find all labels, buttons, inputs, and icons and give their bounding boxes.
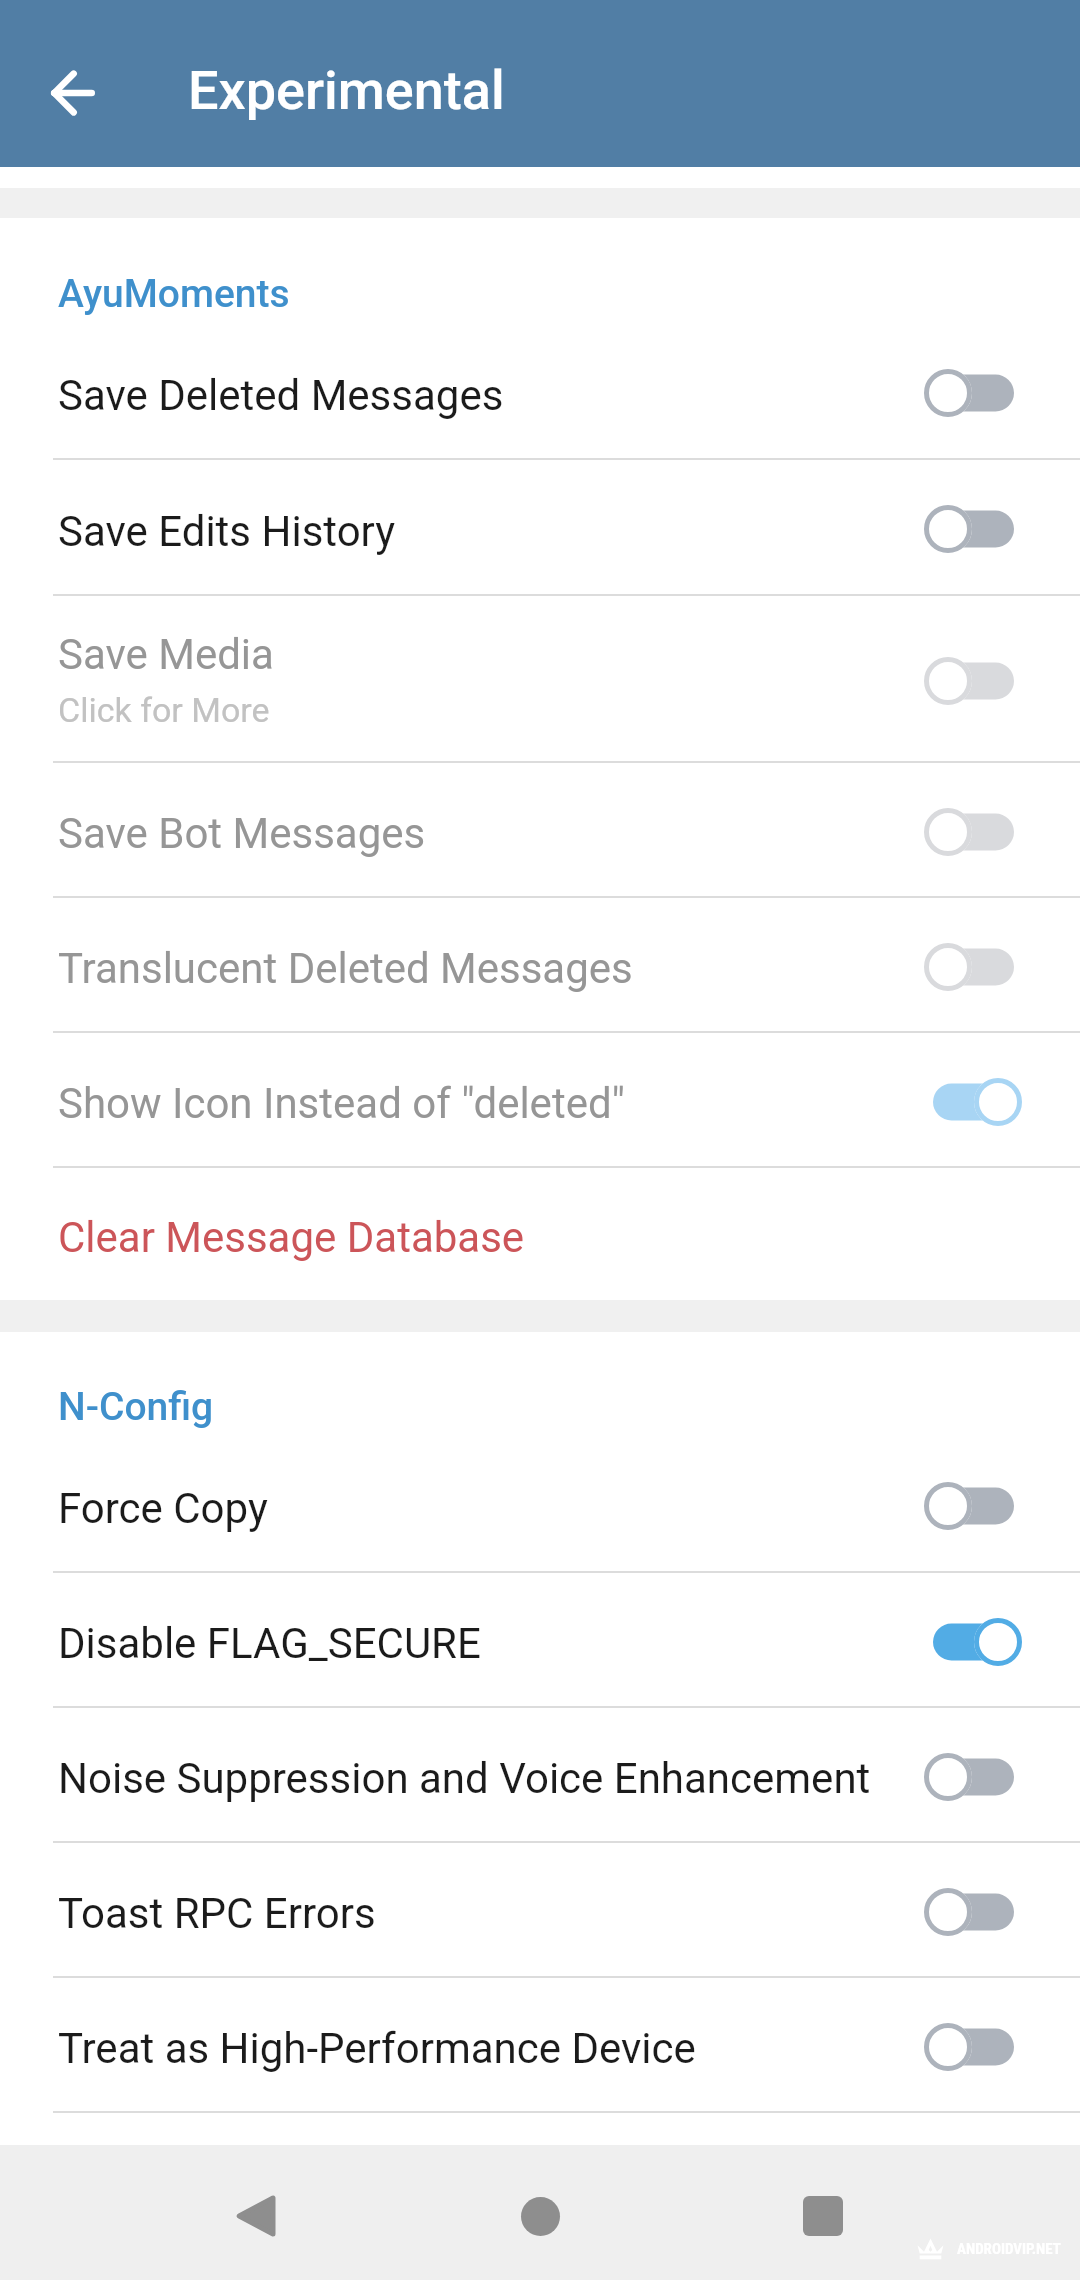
staticText: ANDROIDVIP.NET bbox=[957, 2240, 1061, 2258]
button[interactable]: Clear Message Database bbox=[0, 1168, 1080, 1300]
button[interactable]: Noise Suppression and Voice Enhancement bbox=[0, 1708, 1080, 1843]
button[interactable]: Toggle bbox=[922, 802, 1022, 862]
button[interactable]: Recents bbox=[763, 2156, 883, 2276]
button[interactable]: Toggle bbox=[922, 1747, 1022, 1807]
staticText: Disable FLAG_SECURE bbox=[58, 1619, 481, 1668]
button[interactable]: Toggle bbox=[922, 1476, 1022, 1536]
button[interactable]: Back bbox=[194, 2156, 314, 2276]
button[interactable]: Toggle bbox=[922, 651, 1022, 711]
button[interactable]: Toggle bbox=[922, 2017, 1022, 2077]
staticText: Click for More bbox=[58, 690, 270, 730]
button[interactable]: Show Icon Instead of "deleted" bbox=[0, 1033, 1080, 1168]
button[interactable]: Save Deleted Messages bbox=[0, 324, 1080, 460]
button[interactable]: Toggle bbox=[922, 937, 1022, 997]
button[interactable]: Translucent Deleted Messages bbox=[0, 898, 1080, 1033]
staticText: Show Icon Instead of "deleted" bbox=[58, 1079, 626, 1128]
button[interactable]: Back bbox=[0, 16, 145, 164]
button[interactable]: Toggle bbox=[922, 1882, 1022, 1942]
button[interactable]: Treat as High-Performance Device bbox=[0, 1978, 1080, 2113]
button[interactable]: Home bbox=[480, 2156, 600, 2276]
button[interactable]: Toggle bbox=[922, 1612, 1022, 1672]
button[interactable]: Toggle bbox=[922, 499, 1022, 559]
staticText: Save Edits History bbox=[58, 507, 396, 556]
staticText: N-Config bbox=[58, 1384, 214, 1430]
staticText: Clear Message Database bbox=[58, 1213, 525, 1262]
button[interactable]: Toast RPC Errors bbox=[0, 1843, 1080, 1978]
staticText: Experimental bbox=[188, 59, 505, 122]
staticText: Treat as High-Performance Device bbox=[58, 2024, 696, 2073]
staticText: Noise Suppression and Voice Enhancement bbox=[58, 1754, 871, 1803]
staticText: Toast RPC Errors bbox=[58, 1889, 376, 1938]
button[interactable]: Save Bot Messages bbox=[0, 763, 1080, 898]
button[interactable]: Save Edits History bbox=[0, 460, 1080, 596]
staticText: AyuMoments bbox=[58, 271, 290, 317]
staticText: Save Media bbox=[58, 630, 274, 679]
staticText: Save Bot Messages bbox=[58, 809, 426, 858]
button[interactable]: Toggle bbox=[922, 1072, 1022, 1132]
button[interactable]: Disable FLAG_SECURE bbox=[0, 1573, 1080, 1708]
button[interactable]: Force Copy bbox=[0, 1437, 1080, 1573]
staticText: Translucent Deleted Messages bbox=[58, 944, 633, 993]
staticText: Save Deleted Messages bbox=[58, 371, 504, 420]
button[interactable]: Toggle bbox=[922, 363, 1022, 423]
staticText: Force Copy bbox=[58, 1484, 268, 1533]
button[interactable]: Save Media bbox=[0, 596, 1080, 763]
